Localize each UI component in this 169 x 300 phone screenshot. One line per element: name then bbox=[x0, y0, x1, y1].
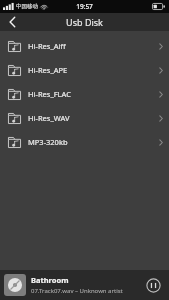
button[interactable]: Hi-Res_APE bbox=[0, 58, 169, 82]
button[interactable]: MP3-320kb bbox=[0, 130, 169, 154]
button[interactable]: Hi-Res_WAV bbox=[0, 106, 169, 130]
staticText: Usb Disk bbox=[66, 16, 103, 28]
button[interactable]: Pause bbox=[141, 273, 165, 297]
staticText: Hi-Res_Aiff bbox=[28, 41, 159, 51]
staticText: Hi-Res_FLAC bbox=[28, 89, 159, 99]
staticText: Hi-Res_WAV bbox=[28, 113, 159, 123]
staticText: Bathroom bbox=[31, 275, 69, 285]
staticText: MP3-320kb bbox=[28, 137, 159, 147]
staticText: 中国移动 bbox=[16, 3, 38, 10]
staticText: 07.Track07.wav – Unknown artist bbox=[31, 287, 123, 295]
staticText: 19:57 bbox=[76, 2, 93, 11]
button[interactable]: Hi-Res_Aiff bbox=[0, 34, 169, 58]
staticText: Hi-Res_APE bbox=[28, 65, 159, 75]
button[interactable]: Bathroom bbox=[0, 270, 169, 300]
button[interactable]: Back bbox=[0, 13, 24, 31]
button[interactable]: Hi-Res_FLAC bbox=[0, 82, 169, 106]
